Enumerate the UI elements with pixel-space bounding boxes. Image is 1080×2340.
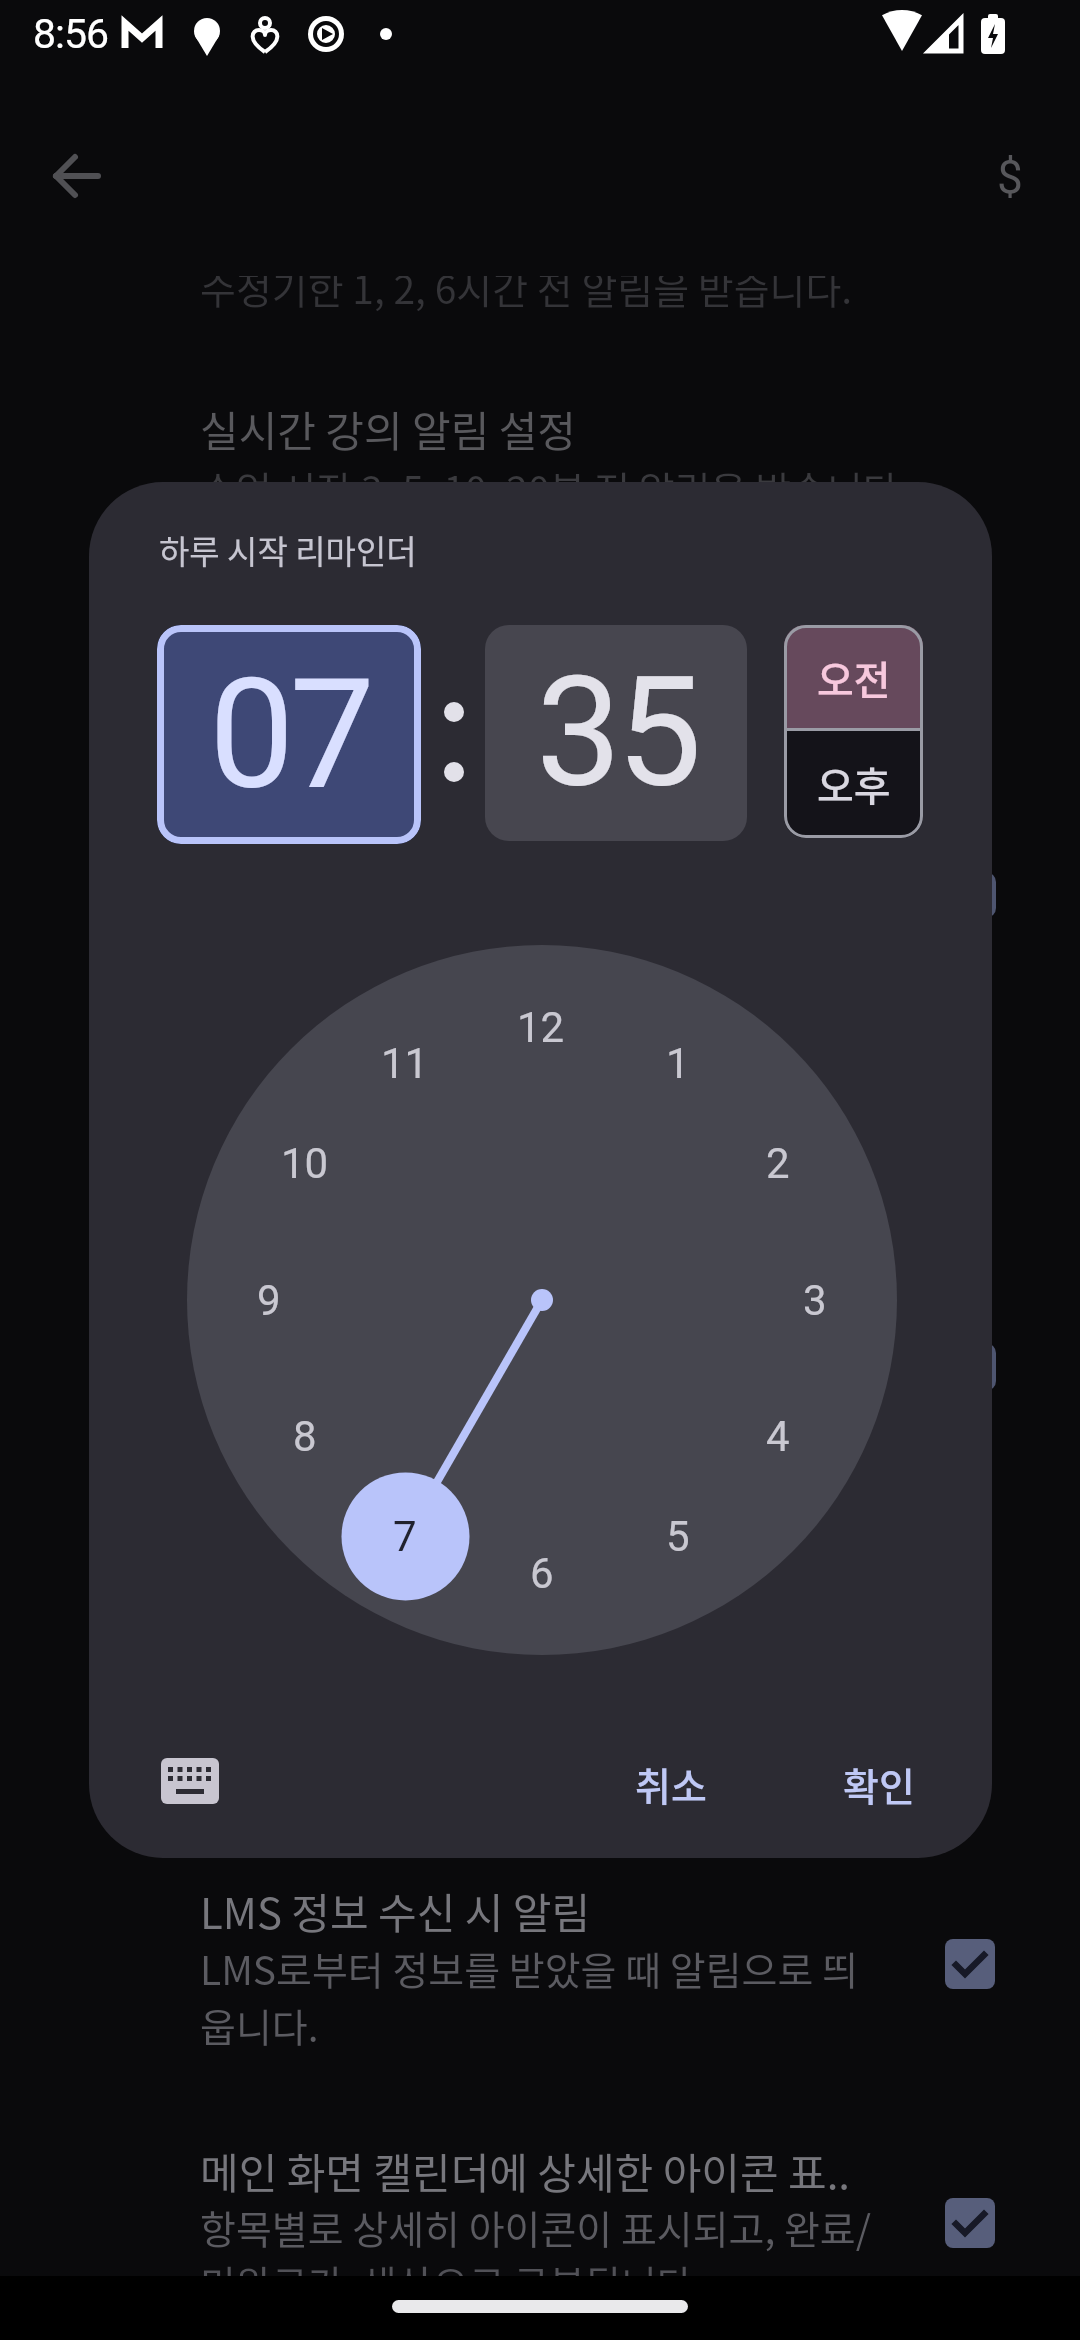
staticText: 12 bbox=[517, 1003, 565, 1052]
staticText: 6 bbox=[530, 1549, 554, 1598]
staticText: 실시간 강의 알림 설정 bbox=[200, 398, 576, 459]
staticText: 2 bbox=[766, 1139, 790, 1188]
button[interactable]: 확인 bbox=[804, 1739, 954, 1829]
button[interactable] bbox=[945, 2198, 995, 2248]
staticText: 35 bbox=[536, 644, 697, 822]
staticText: 하루 시작 리마인더 bbox=[159, 526, 417, 574]
staticText: 07 bbox=[209, 646, 370, 824]
button[interactable]: 오후 bbox=[784, 730, 923, 838]
button[interactable] bbox=[962, 129, 1058, 225]
staticText: 8:56 bbox=[33, 10, 109, 58]
button[interactable]: 오전 bbox=[784, 625, 923, 730]
button[interactable]: 취소 bbox=[596, 1739, 746, 1829]
button[interactable] bbox=[27, 128, 123, 224]
button[interactable] bbox=[133, 1730, 247, 1832]
button[interactable] bbox=[945, 1939, 995, 1989]
staticText: 웁니다. bbox=[200, 1997, 319, 2053]
staticText: 메인 화면 캘린더에 상세한 아이콘 표.. bbox=[200, 2140, 850, 2201]
staticText: 9 bbox=[257, 1276, 281, 1325]
staticText: 3 bbox=[803, 1276, 827, 1325]
staticText: LMS로부터 정보를 받았을 때 알림으로 띄 bbox=[200, 1940, 858, 1996]
staticText: 7 bbox=[393, 1512, 417, 1561]
staticText: 수업 시작 3, 5, 10, 20분 전 알림을 받습니다. bbox=[200, 460, 910, 516]
button[interactable]: 35 bbox=[485, 625, 747, 841]
staticText: 확인 bbox=[843, 1756, 915, 1812]
staticText: 수정기한 1, 2, 6시간 전 알림을 받습니다. bbox=[200, 259, 853, 315]
staticText: 오후 bbox=[817, 755, 891, 813]
staticText: 11 bbox=[381, 1039, 429, 1088]
staticText: 1 bbox=[666, 1039, 690, 1088]
staticText: 항목별로 상세히 아이콘이 표시되고, 완료/ bbox=[200, 2199, 872, 2255]
staticText: $ bbox=[997, 150, 1023, 204]
staticText: 취소 bbox=[635, 1756, 707, 1812]
staticText: 10 bbox=[281, 1139, 329, 1188]
staticText: 4 bbox=[766, 1412, 790, 1461]
button[interactable]: 07 bbox=[157, 625, 421, 844]
staticText: LMS 정보 수신 시 알림 bbox=[200, 1880, 591, 1941]
staticText: 미완료가 색상으로 구분됩니다 bbox=[200, 2254, 693, 2310]
staticText: 오전 bbox=[817, 649, 891, 707]
staticText: 8 bbox=[293, 1412, 317, 1461]
staticText: 5 bbox=[666, 1512, 690, 1561]
